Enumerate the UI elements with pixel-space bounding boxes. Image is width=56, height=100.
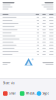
staticText: Gmail: [9, 92, 16, 95]
staticText: WhatsApp: [26, 92, 36, 95]
staticText: Share via: [3, 81, 14, 85]
button[interactable]: Skype: [37, 91, 53, 96]
button[interactable]: WhatsApp: [20, 91, 36, 96]
staticText: Skype: [42, 92, 49, 95]
button[interactable]: Gmail: [3, 91, 19, 96]
